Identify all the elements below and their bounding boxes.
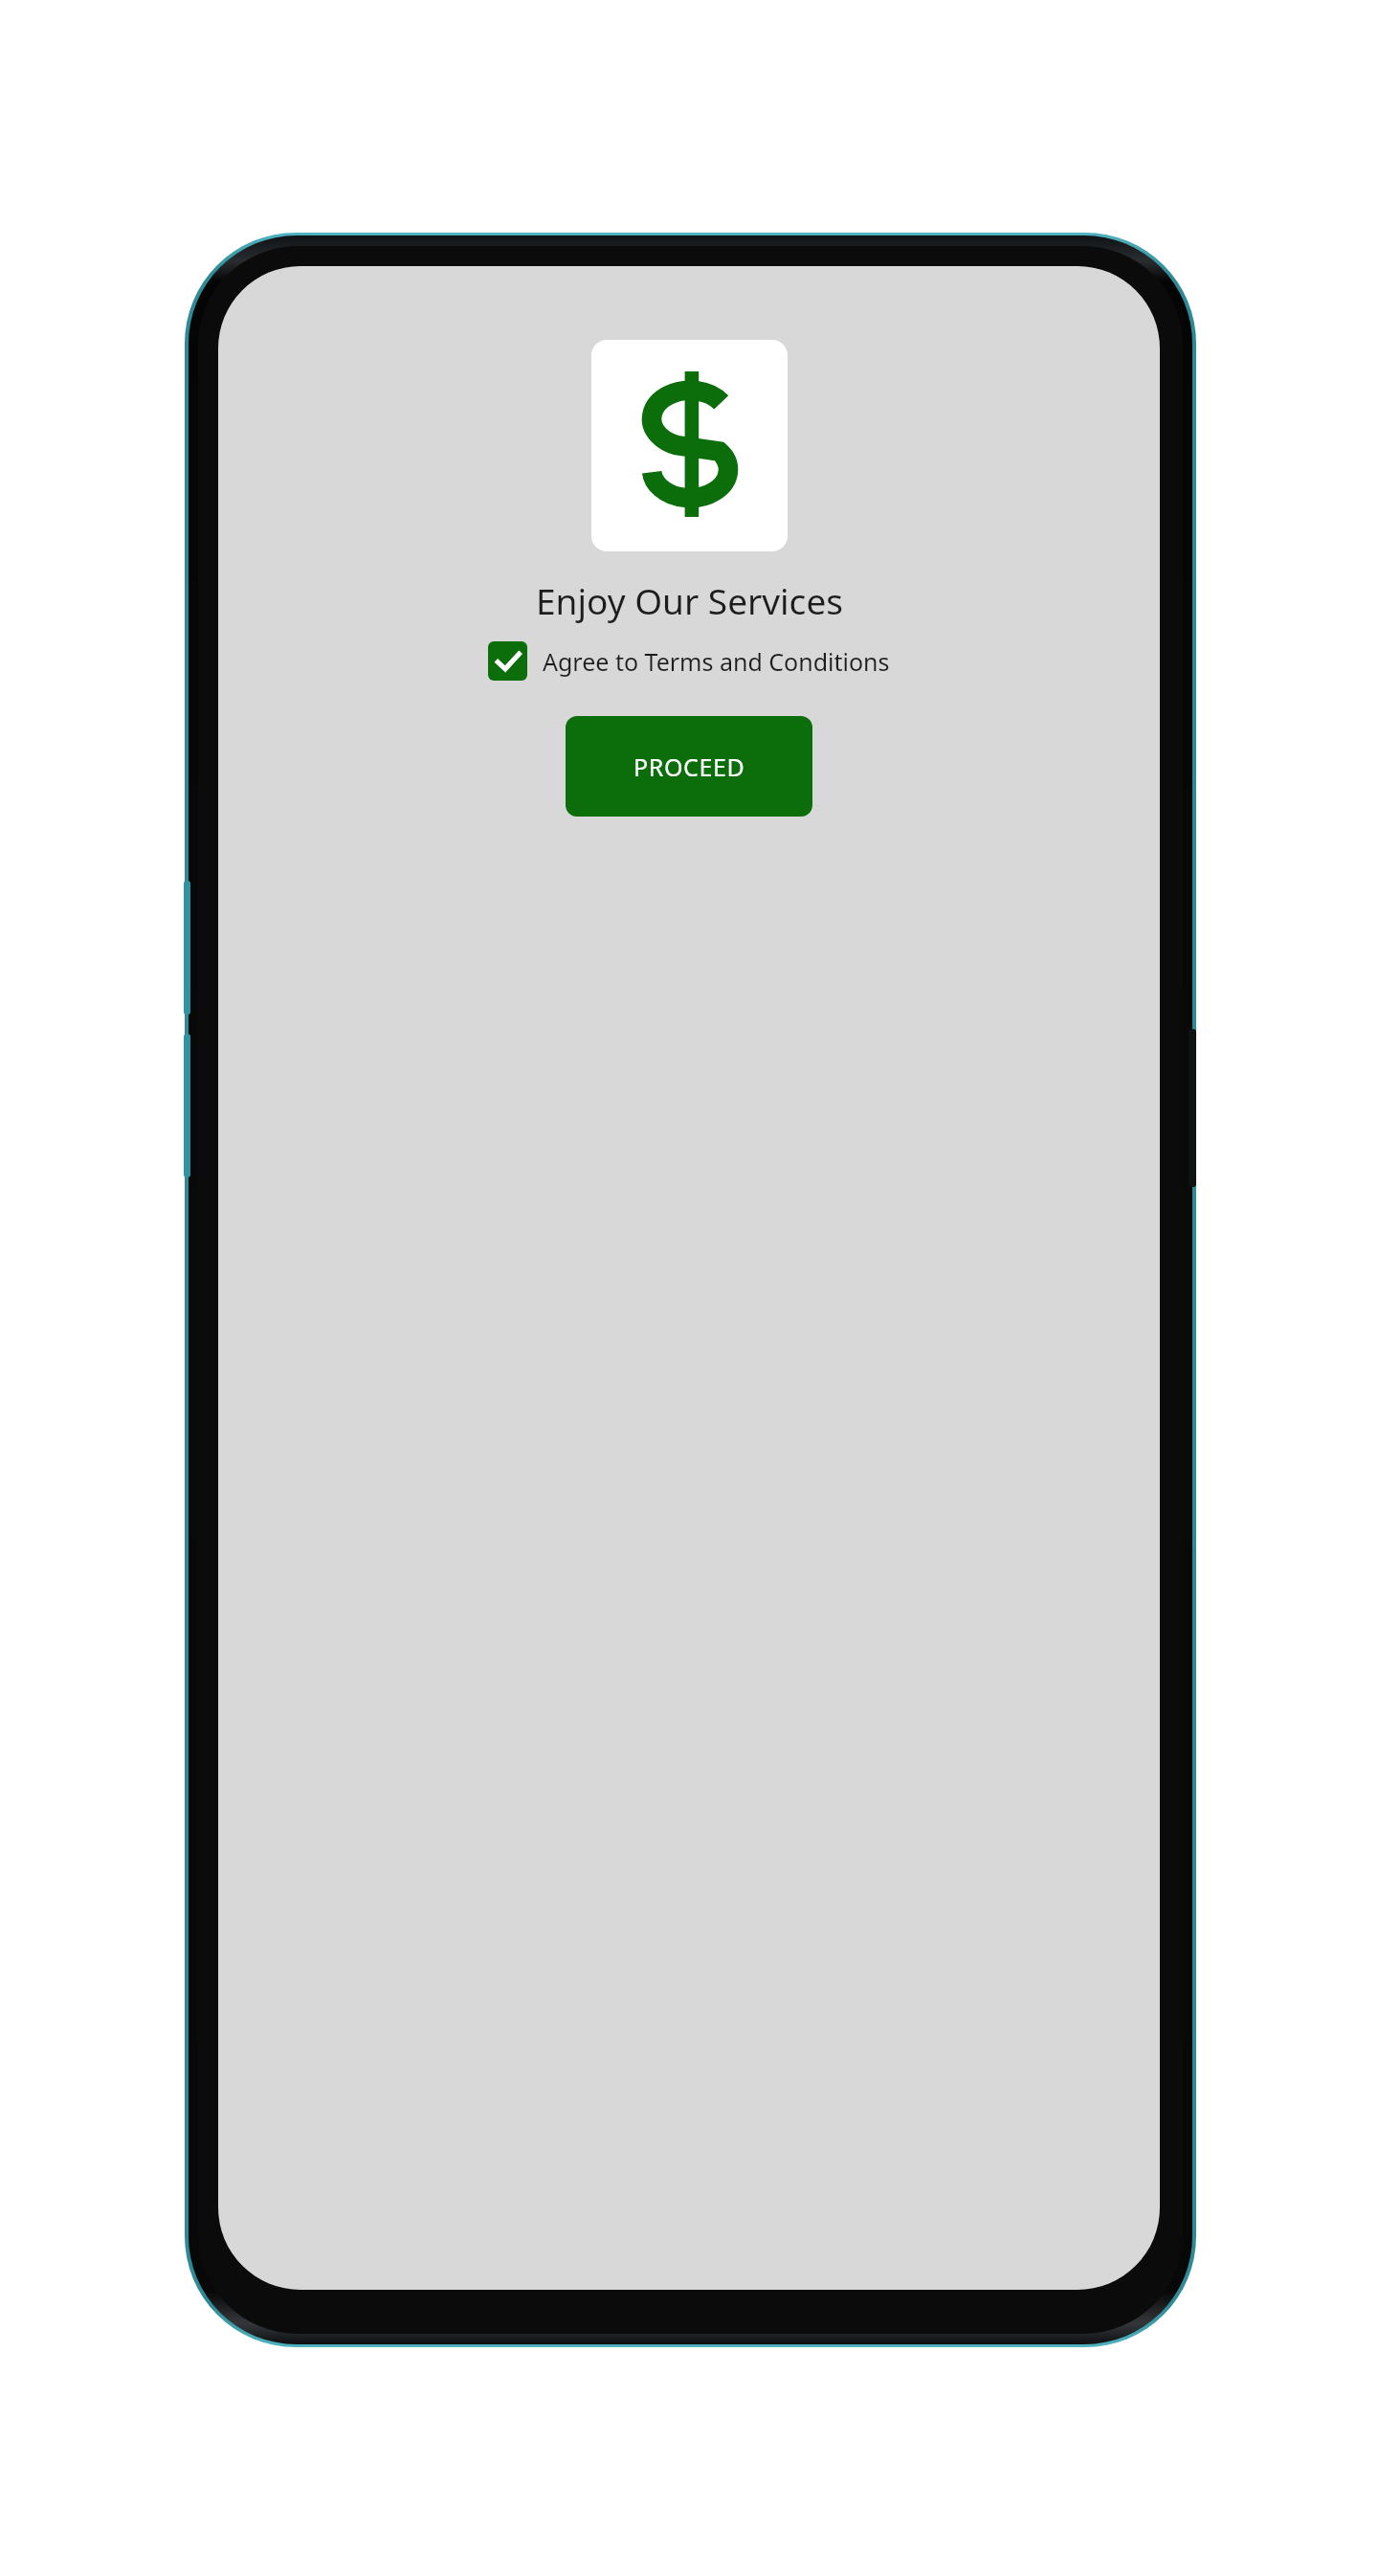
- staticText: Enjoy Our Services: [536, 576, 843, 624]
- staticText: PROCEED: [633, 750, 745, 783]
- button[interactable]: Agree to Terms and Conditions: [488, 641, 890, 681]
- button[interactable]: App logo: [591, 340, 788, 551]
- button[interactable]: PROCEED: [566, 716, 812, 817]
- staticText: Agree to Terms and Conditions: [543, 645, 890, 678]
